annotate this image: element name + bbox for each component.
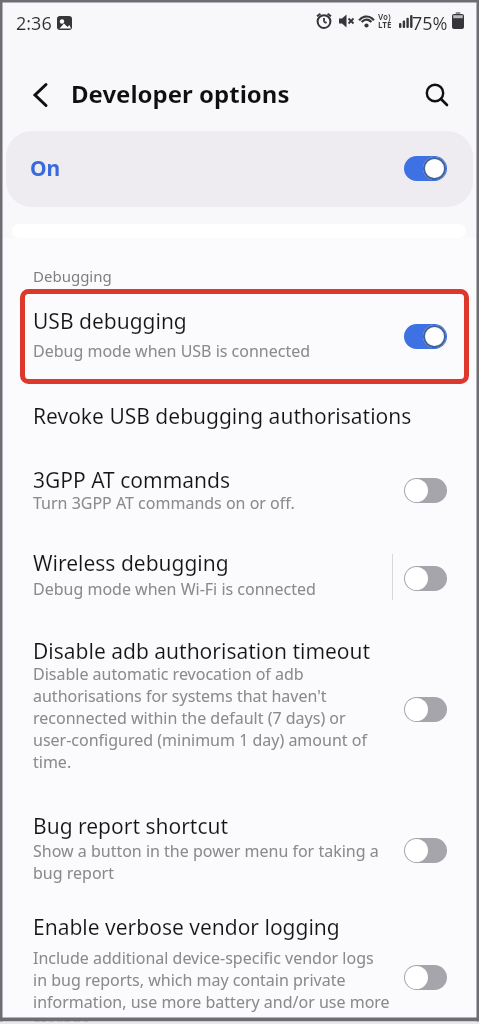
staticText: LTE bbox=[378, 19, 392, 30]
staticText: 2:36 bbox=[16, 11, 52, 36]
button[interactable] bbox=[8, 296, 471, 378]
staticText: On bbox=[30, 154, 61, 183]
staticText: Vo) bbox=[378, 11, 391, 22]
staticText: Turn 3GPP AT commands on or off. bbox=[33, 492, 295, 514]
button[interactable] bbox=[404, 156, 447, 181]
staticText: 3GPP AT commands bbox=[33, 466, 231, 495]
button[interactable] bbox=[404, 965, 447, 990]
button[interactable] bbox=[404, 697, 447, 722]
button[interactable] bbox=[8, 908, 471, 1024]
staticText: Disable adb authorisation timeout bbox=[33, 637, 371, 666]
staticText: Disable automatic revocation of adb auth… bbox=[33, 663, 367, 773]
staticText: Debug mode when USB is connected bbox=[33, 340, 311, 362]
button[interactable] bbox=[8, 632, 471, 782]
button[interactable] bbox=[404, 566, 447, 591]
staticText: Wireless debugging bbox=[33, 549, 229, 578]
button[interactable] bbox=[8, 548, 471, 614]
button[interactable] bbox=[404, 478, 447, 503]
staticText: 75% bbox=[412, 11, 448, 36]
button[interactable] bbox=[31, 83, 53, 107]
button[interactable] bbox=[8, 460, 471, 530]
staticText: Show a button in the power menu for taki… bbox=[33, 840, 379, 884]
staticText: Revoke USB debugging authorisations bbox=[33, 402, 412, 431]
button[interactable] bbox=[404, 838, 447, 863]
staticText: Enable verbose vendor logging bbox=[33, 913, 340, 942]
staticText: Bug report shortcut bbox=[33, 812, 229, 841]
staticText: Debug mode when Wi-Fi is connected bbox=[33, 578, 316, 600]
button[interactable] bbox=[404, 324, 447, 349]
staticText: Debugging bbox=[33, 266, 112, 286]
staticText: USB debugging bbox=[33, 307, 187, 336]
button[interactable] bbox=[6, 131, 473, 207]
button[interactable] bbox=[8, 808, 471, 898]
button[interactable] bbox=[424, 82, 450, 108]
button[interactable] bbox=[8, 395, 471, 440]
staticText: Include additional device-specific vendo… bbox=[33, 947, 390, 1024]
staticText: Developer options bbox=[71, 77, 290, 110]
